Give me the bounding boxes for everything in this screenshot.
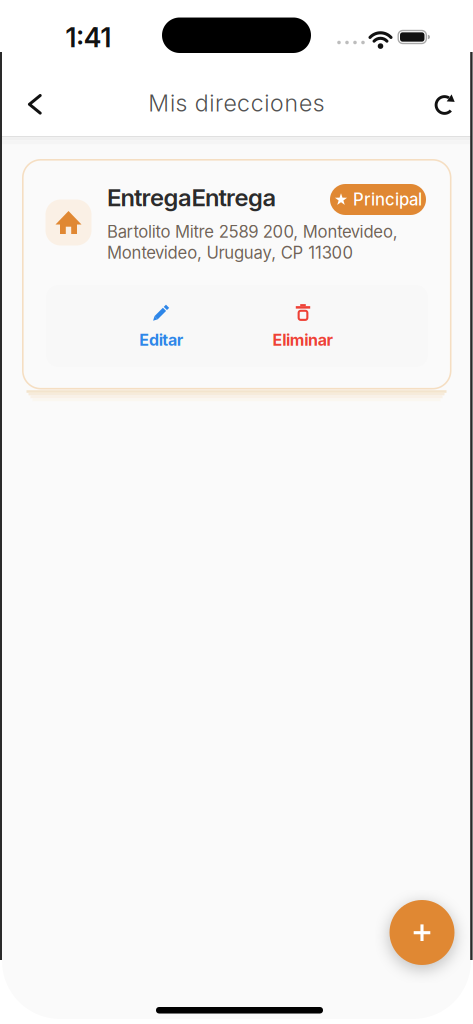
button[interactable]: Agregar dirección bbox=[389, 900, 454, 965]
button[interactable]: Eliminar bbox=[243, 295, 363, 357]
staticText: Mis direcciones bbox=[148, 89, 325, 117]
staticText: EntregaEntrega bbox=[107, 183, 276, 212]
button[interactable]: Atrás bbox=[13, 85, 49, 121]
staticText: Montevideo, Uruguay, CP 11300 bbox=[107, 242, 353, 263]
staticText: Bartolito Mitre 2589 200, Montevideo, bbox=[107, 221, 398, 242]
staticText: Eliminar bbox=[272, 330, 333, 350]
staticText: 1:41 bbox=[66, 21, 111, 54]
button[interactable]: Actualizar bbox=[426, 87, 462, 123]
staticText: Editar bbox=[139, 330, 184, 350]
staticText: Principal bbox=[353, 189, 422, 210]
button[interactable]: Editar bbox=[101, 295, 221, 357]
